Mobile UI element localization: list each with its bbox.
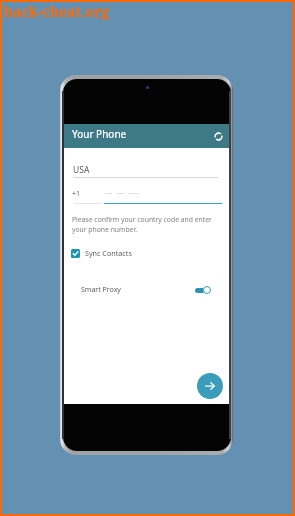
staticText: USA — [73, 164, 90, 176]
staticText: --- --- ---- — [105, 188, 140, 198]
button[interactable]: Next — [197, 373, 223, 399]
staticText: Smart Proxy — [81, 285, 121, 295]
staticText: +1 — [72, 189, 81, 199]
staticText: hack-cheat.org — [4, 2, 110, 21]
staticText: Sync Contacts — [85, 248, 132, 258]
staticText: Please confirm your country code and ent… — [72, 215, 218, 234]
button[interactable]: Smart Proxy — [64, 279, 229, 301]
button[interactable]: Refresh — [209, 127, 227, 145]
button[interactable]: Sync Contacts — [67, 244, 143, 262]
staticText: Your Phone — [72, 127, 127, 141]
